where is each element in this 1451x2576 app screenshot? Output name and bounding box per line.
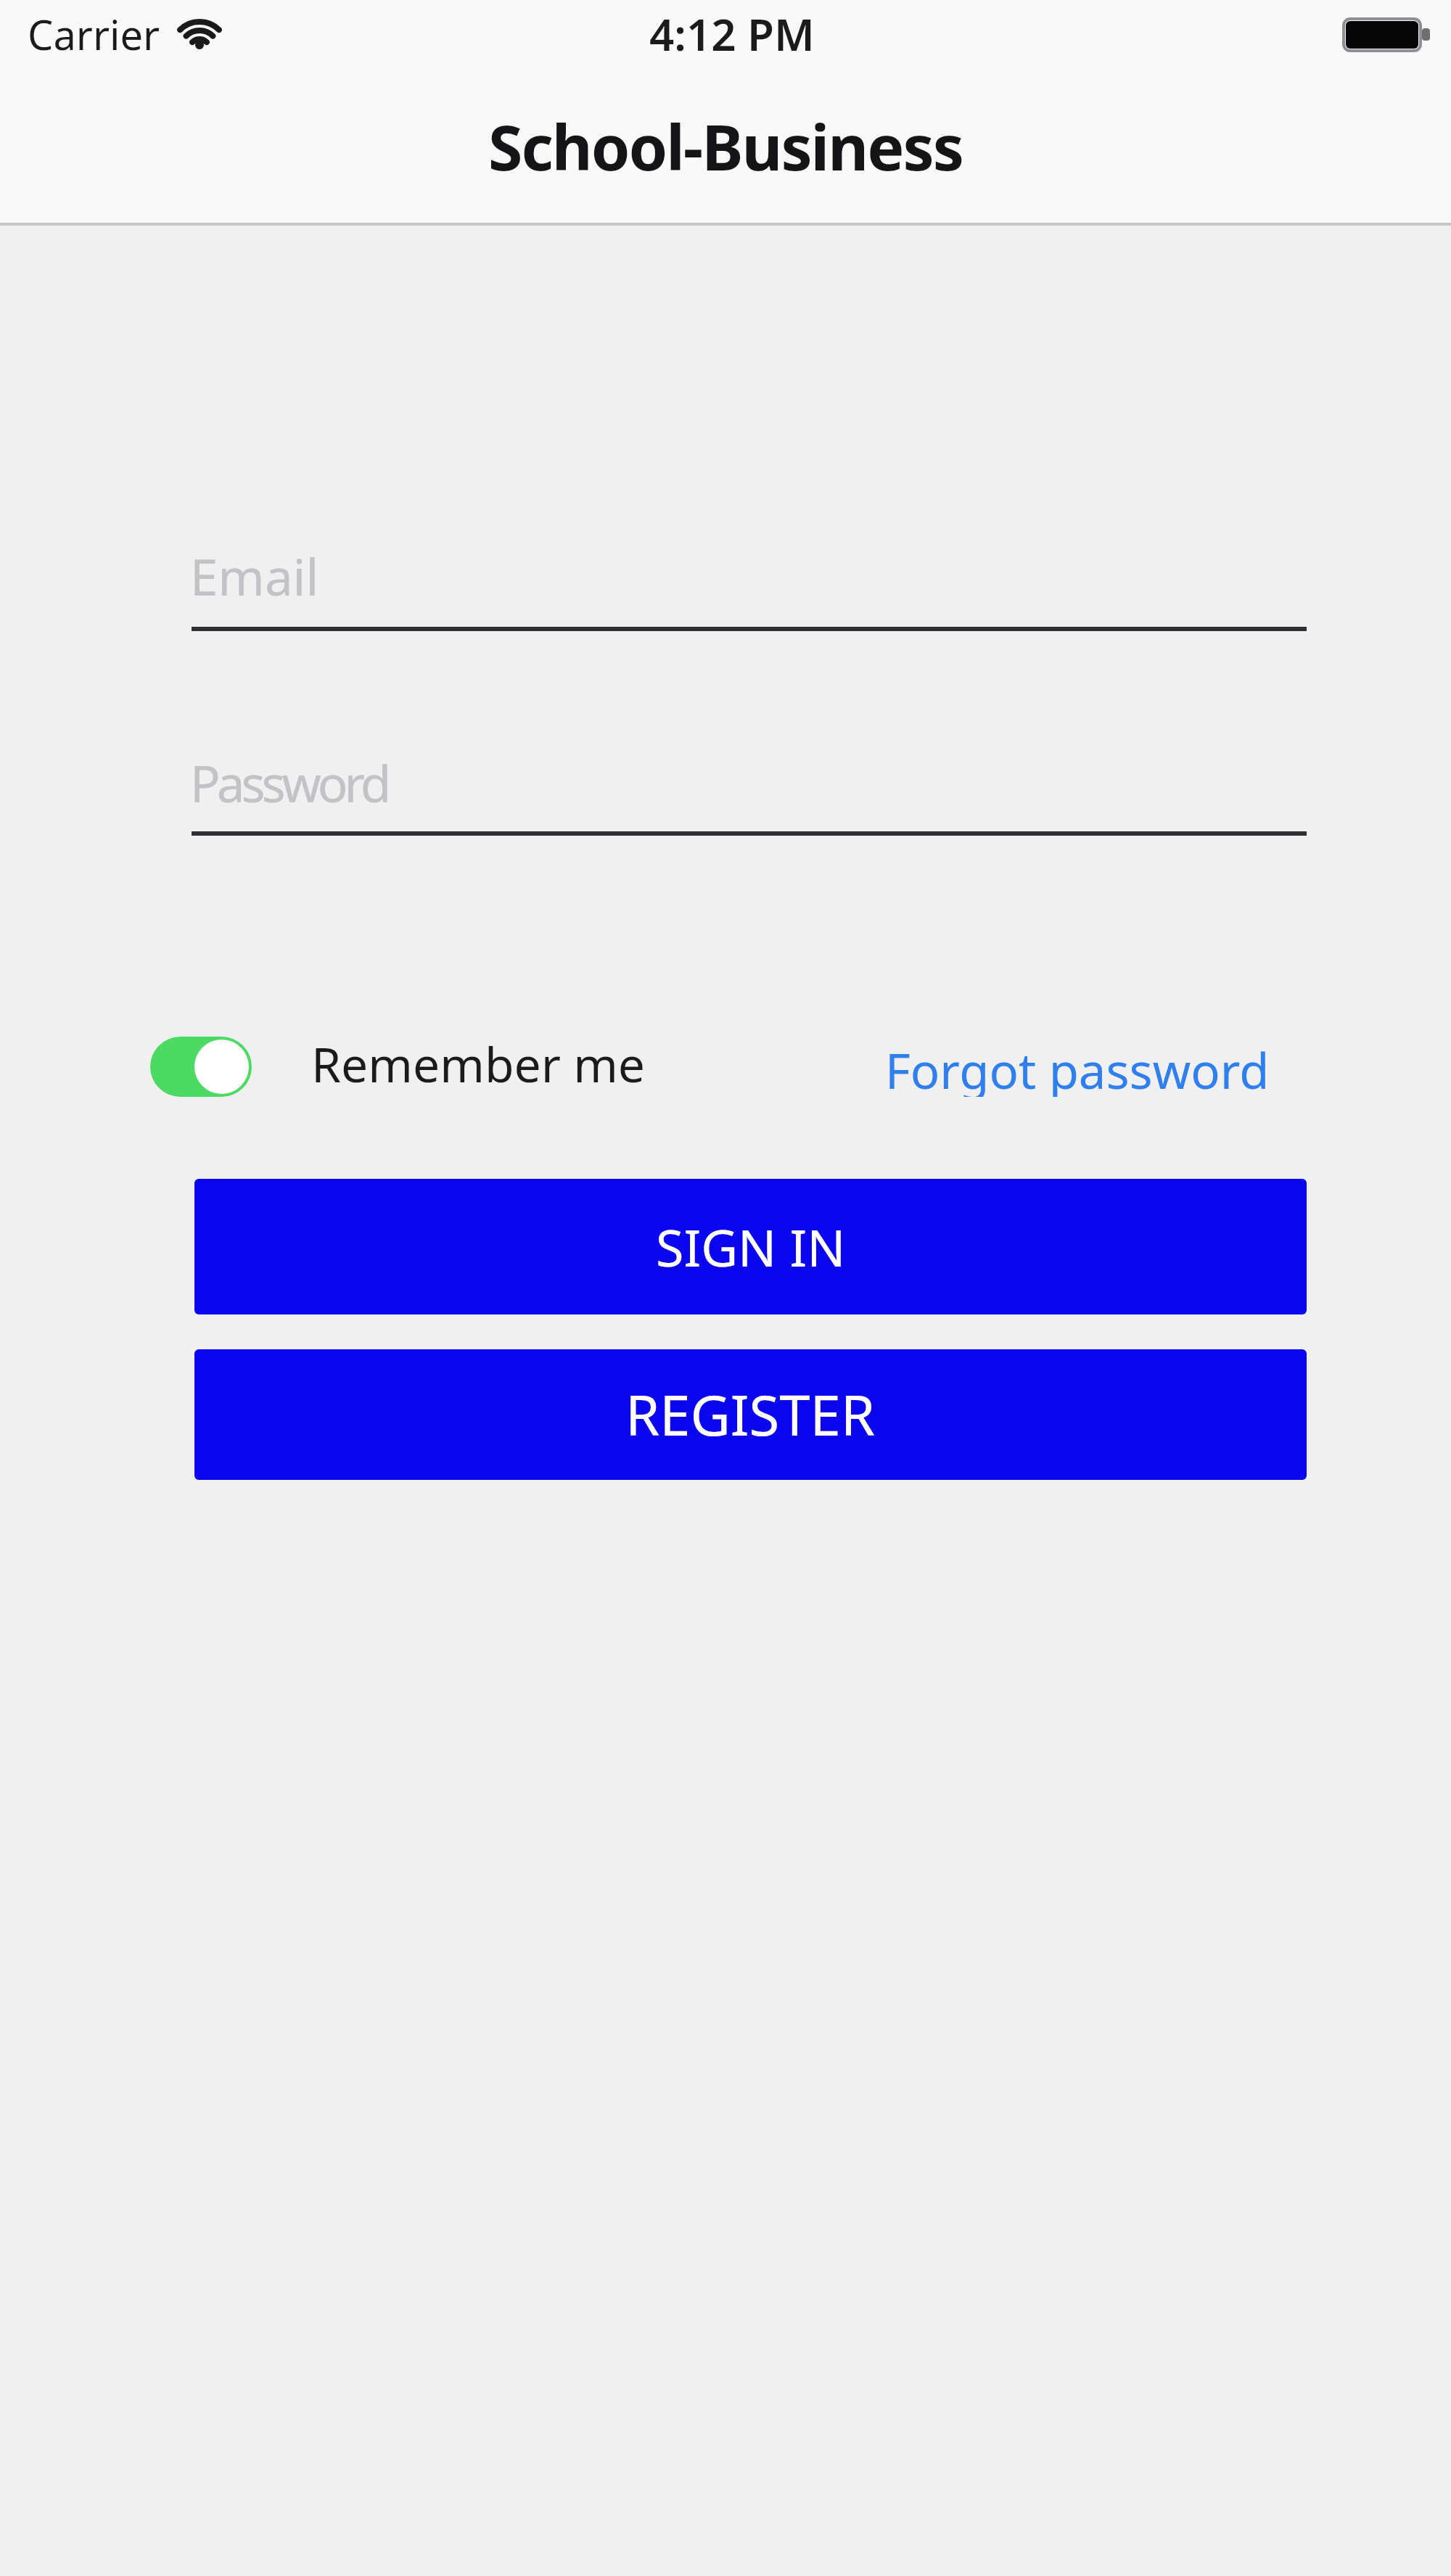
staticText: SIGN IN (656, 1212, 846, 1281)
staticText: 4:12 PM (649, 4, 815, 64)
staticText: Email (190, 542, 319, 610)
button[interactable]: REGISTER (194, 1349, 1307, 1480)
button[interactable]: Forgot password (885, 1037, 1270, 1097)
staticText: Password (190, 749, 388, 817)
button[interactable]: SIGN IN (194, 1179, 1307, 1314)
button[interactable] (150, 1037, 252, 1097)
staticText: Remember me (311, 1031, 646, 1091)
staticText: REGISTER (625, 1377, 876, 1452)
staticText: Carrier (28, 7, 160, 62)
staticText: School-Business (488, 104, 963, 189)
